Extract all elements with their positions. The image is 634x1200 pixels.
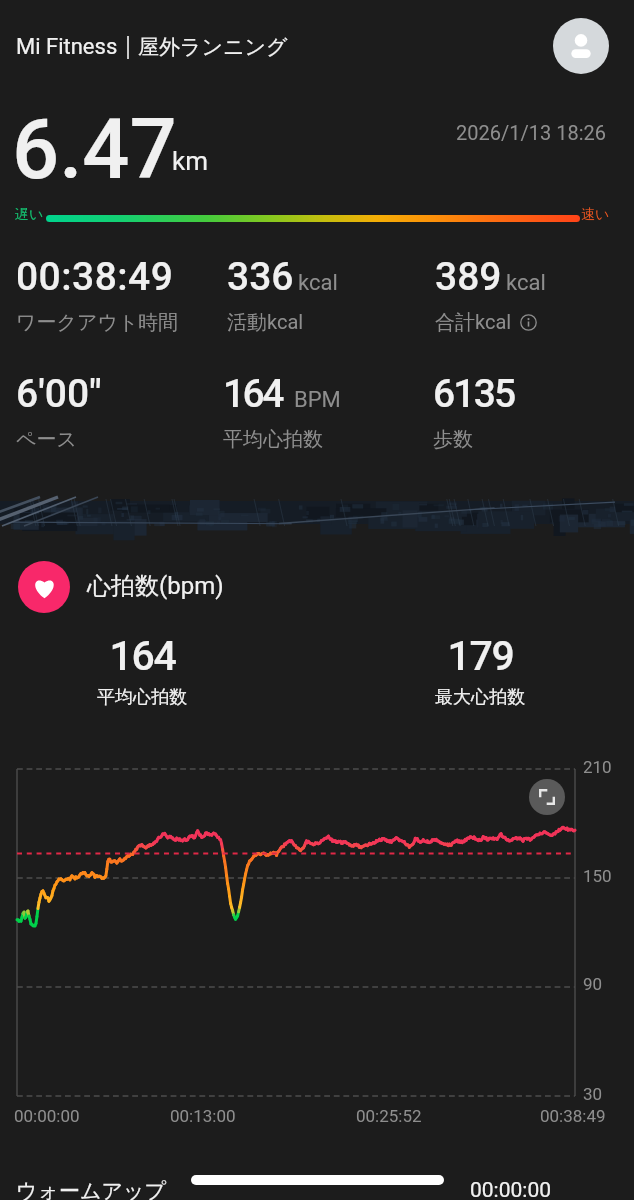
staticText: 00:25:52 (356, 1106, 422, 1126)
button[interactable]: Profile (553, 18, 609, 74)
staticText: 活動kcal (227, 310, 304, 335)
staticText: kcal (298, 270, 338, 296)
staticText: 90 (583, 974, 603, 994)
staticText: 歩数 (433, 427, 473, 452)
staticText: 6.47 (12, 101, 177, 198)
staticText: 00:38:49 (16, 254, 174, 300)
staticText: ワークアウト時間 (16, 310, 179, 335)
staticText: BPM (294, 387, 341, 413)
staticText: Mi Fitness (16, 34, 118, 60)
staticText: 150 (583, 866, 612, 886)
staticText: 平均心拍数 (223, 427, 323, 452)
staticText: ウォームアップ (16, 1178, 166, 1200)
staticText: 336 (227, 254, 294, 300)
staticText: 00:13:00 (170, 1106, 236, 1126)
button[interactable]: Heart rate (18, 561, 70, 613)
staticText: 30 (583, 1084, 603, 1104)
staticText: 6'00" (16, 371, 102, 417)
staticText: 210 (583, 757, 612, 777)
staticText: 速い (581, 206, 610, 224)
staticText: 179 (447, 632, 514, 680)
staticText: 6135 (433, 371, 515, 417)
staticText: kcal (506, 270, 546, 296)
staticText: 389 (435, 254, 502, 300)
staticText: 屋外ランニング (138, 34, 288, 60)
staticText: 心拍数(bpm) (87, 571, 224, 601)
staticText: 合計kcal (435, 310, 512, 335)
button[interactable]: Expand chart (529, 779, 565, 815)
staticText: 遅い (15, 206, 44, 224)
staticText: 最大心拍数 (435, 686, 525, 709)
staticText: 00:00:00 (470, 1178, 551, 1200)
staticText: 164 (223, 371, 282, 417)
staticText: 2026/1/13 18:26 (456, 121, 606, 144)
staticText: 164 (109, 632, 176, 680)
staticText: 00:00:00 (14, 1106, 80, 1126)
staticText: km (172, 146, 208, 176)
staticText: ペース (16, 427, 77, 452)
staticText: 00:38:49 (540, 1106, 606, 1126)
staticText: 平均心拍数 (97, 686, 187, 709)
